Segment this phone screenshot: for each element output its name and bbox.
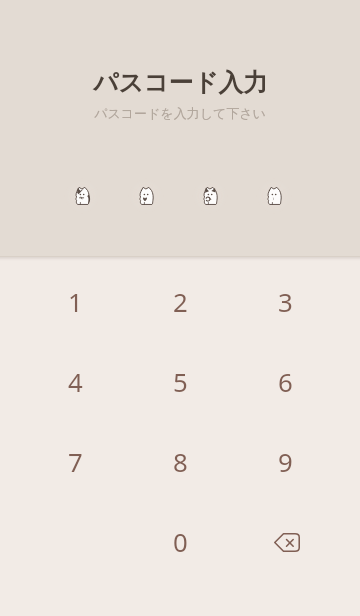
staticText: パスコード入力 [93,67,268,98]
staticText: 2 [173,284,188,319]
button[interactable]: 1 [22,261,128,341]
button[interactable]: 0 [128,501,233,581]
button[interactable]: 8 [128,421,233,501]
staticText: 9 [278,444,293,479]
staticText: 5 [173,364,188,399]
button[interactable]: 4 [22,341,128,421]
button[interactable]: 9 [233,421,338,501]
button[interactable]: 6 [233,341,338,421]
staticText: 7 [68,444,83,479]
button[interactable]: Delete last digit [233,501,338,581]
staticText: 8 [173,444,188,479]
staticText: 6 [278,364,293,399]
staticText: 4 [68,364,83,399]
staticText: 3 [278,284,293,319]
button[interactable]: 3 [233,261,338,341]
button[interactable]: 2 [128,261,233,341]
button[interactable]: 7 [22,421,128,501]
staticText: 0 [173,524,188,559]
staticText: パスコードを入力して下さい [94,105,266,121]
button[interactable]: 5 [128,341,233,421]
staticText: 1 [68,284,83,319]
